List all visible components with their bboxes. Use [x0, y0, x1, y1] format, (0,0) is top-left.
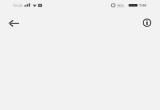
- staticText: 1m2s: [13, 2, 23, 8]
- button[interactable]: Back: [2, 11, 26, 35]
- button[interactable]: Info: [135, 11, 159, 35]
- staticText: 9:44: [139, 2, 146, 8]
- staticText: 96%: [117, 3, 124, 8]
